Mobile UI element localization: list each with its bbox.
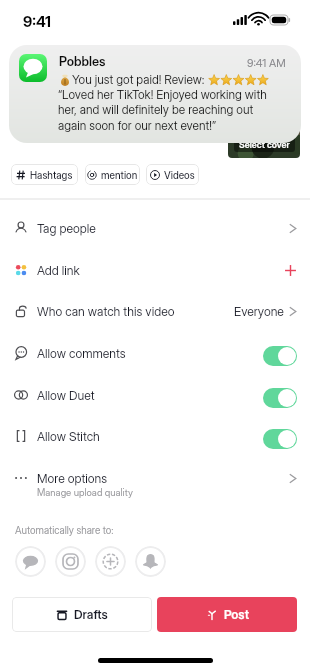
staticText: Pobbles: [59, 54, 106, 69]
staticText: Manage upload quality: [37, 487, 133, 499]
button[interactable]: Share to Instagram Story: [95, 546, 126, 577]
button[interactable]: Who can watch this video: [0, 290, 310, 332]
button[interactable]: Share to Messages: [15, 546, 46, 577]
staticText: Videos: [164, 169, 195, 181]
staticText: Everyone: [234, 304, 284, 319]
staticText: Post: [224, 607, 249, 622]
staticText: Allow Stitch: [37, 429, 100, 444]
staticText: “Loved her TikTok! Enjoyed working with …: [58, 87, 274, 133]
staticText: Allow comments: [37, 346, 126, 361]
staticText: Hashtags: [30, 169, 73, 181]
staticText: Tag people: [37, 221, 96, 236]
button[interactable]: mention: [85, 164, 140, 185]
button[interactable]: Tag people: [0, 207, 310, 249]
button[interactable]: Select cover: [228, 62, 300, 158]
button[interactable]: Select cover: [234, 137, 295, 152]
button[interactable]: Share to Instagram: [55, 546, 86, 577]
button[interactable]: Toggle: [263, 388, 297, 408]
staticText: You just got paid! Review:: [72, 72, 205, 87]
staticText: Automatically share to:: [15, 524, 114, 536]
button[interactable]: Add link: [0, 249, 310, 291]
staticText: Drafts: [74, 607, 108, 622]
staticText: More options: [37, 471, 108, 486]
button[interactable]: Allow comments: [0, 332, 310, 374]
staticText: 9:41 AM: [247, 56, 286, 69]
staticText: Select cover: [239, 139, 290, 150]
button[interactable]: Allow Stitch: [0, 415, 310, 457]
button[interactable]: Videos: [146, 164, 199, 185]
button[interactable]: Toggle: [263, 346, 297, 366]
staticText: mention: [101, 169, 138, 181]
button[interactable]: More options: [0, 457, 310, 499]
staticText: Allow Duet: [37, 388, 95, 403]
staticText: Who can watch this video: [37, 304, 175, 319]
button[interactable]: Share to Snapchat: [135, 546, 166, 577]
button[interactable]: Drafts: [12, 597, 152, 632]
staticText: Add link: [37, 263, 80, 278]
button[interactable]: Hashtags: [11, 164, 78, 185]
button[interactable]: Toggle: [263, 429, 297, 449]
button[interactable]: Allow Duet: [0, 374, 310, 416]
button[interactable]: Pobbles: [9, 45, 301, 143]
button[interactable]: Post: [157, 597, 297, 632]
staticText: 9:41: [23, 12, 51, 30]
